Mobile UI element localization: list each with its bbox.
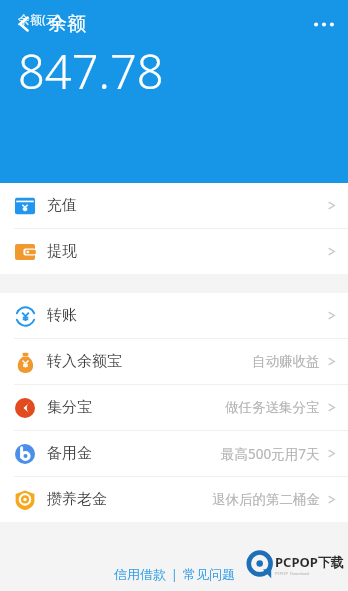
staticText: 常见问题 xyxy=(183,566,235,582)
staticText: 余额(元) xyxy=(18,11,62,27)
button[interactable]: 备用金 xyxy=(0,431,348,477)
button[interactable]: 充值 xyxy=(0,183,348,229)
staticText: PCPOP Download xyxy=(275,571,310,576)
button[interactable]: 提现 xyxy=(0,229,348,274)
staticText: 做任务送集分宝 xyxy=(225,399,320,416)
staticText: 备用金 xyxy=(47,444,92,463)
staticText: 转账 xyxy=(47,306,77,325)
staticText: 充值 xyxy=(47,196,77,215)
staticText: 集分宝 xyxy=(47,398,92,417)
button[interactable]: More options xyxy=(300,0,348,48)
staticText: 退休后的第二桶金 xyxy=(212,491,320,508)
staticText: 余额 xyxy=(48,12,86,36)
staticText: 攒养老金 xyxy=(47,490,107,509)
staticText: 847.78 xyxy=(18,39,164,103)
button[interactable]: Back xyxy=(0,0,48,48)
button[interactable]: 集分宝 xyxy=(0,385,348,431)
staticText: 最高500元用7天 xyxy=(221,445,320,463)
button[interactable]: 攒养老金 xyxy=(0,477,348,522)
staticText: 信用借款 xyxy=(114,566,166,582)
staticText: 提现 xyxy=(47,242,77,261)
button[interactable]: 转账 xyxy=(0,293,348,339)
staticText: PCPOP下载 xyxy=(275,553,344,571)
staticText: 自动赚收益 xyxy=(252,353,320,370)
button[interactable]: 信用借款 xyxy=(112,563,168,585)
button[interactable]: 常见问题 xyxy=(181,563,237,585)
button[interactable]: 转入余额宝 xyxy=(0,339,348,385)
staticText: 转入余额宝 xyxy=(47,352,122,371)
staticText: | xyxy=(168,566,181,582)
